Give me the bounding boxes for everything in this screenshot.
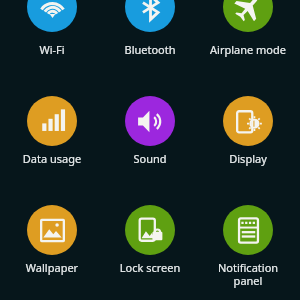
staticText: Sound [108, 151, 192, 166]
other: Bluetooth [125, 0, 175, 32]
button[interactable]: Notification panel [200, 205, 296, 288]
button[interactable]: Display [200, 96, 296, 166]
staticText: Data usage [10, 151, 94, 166]
staticText: Notification panel [206, 260, 290, 288]
other: Wallpaper [27, 205, 77, 255]
other: Notification panel [223, 205, 273, 255]
staticText: Airplane mode [206, 42, 290, 57]
button[interactable]: Wi-Fi [4, 0, 100, 57]
other: Data usage [27, 96, 77, 146]
staticText: Display [206, 151, 290, 166]
staticText: Wi-Fi [10, 42, 94, 57]
button[interactable]: Lock screen [102, 205, 198, 275]
other: Lock screen [125, 205, 175, 255]
other: Display [223, 96, 273, 146]
staticText: Lock screen [108, 260, 192, 275]
button[interactable]: Data usage [4, 96, 100, 166]
other: Wi-Fi [27, 0, 77, 32]
button[interactable]: Sound [102, 96, 198, 166]
button[interactable]: Wallpaper [4, 205, 100, 275]
button[interactable]: Airplane mode [200, 0, 296, 57]
button[interactable]: Bluetooth [102, 0, 198, 57]
other: Airplane mode [223, 0, 273, 32]
staticText: Wallpaper [10, 260, 94, 275]
other: Sound [125, 96, 175, 146]
staticText: Bluetooth [108, 42, 192, 57]
